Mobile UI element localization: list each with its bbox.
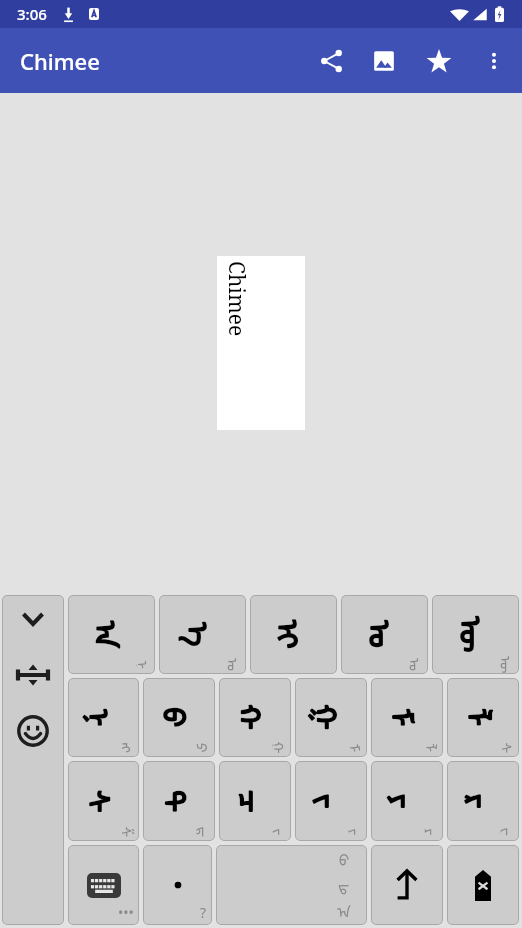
staticText: ᠵ: [272, 828, 291, 835]
staticText: ᠯ: [457, 708, 508, 726]
staticText: ᠭ: [272, 741, 291, 754]
staticText: ᠭ: [305, 704, 356, 730]
button[interactable]: Delete: [447, 845, 519, 925]
staticText: ᠴ: [230, 790, 281, 813]
button[interactable]: Share: [310, 39, 354, 83]
button[interactable]: ᠮ: [371, 678, 443, 757]
button[interactable]: More options: [472, 39, 516, 83]
staticText: ᠷ: [458, 794, 509, 809]
button[interactable]: Keyboard options: [2, 595, 64, 925]
staticText: ᠱ: [120, 826, 139, 837]
staticText: ᠪ: [153, 707, 204, 727]
staticText: ᠠ: [86, 621, 137, 648]
staticText: ᠪ: [339, 845, 350, 870]
button[interactable]: ᠨ: [68, 678, 139, 757]
button[interactable]: ᠲ: [143, 761, 215, 841]
button[interactable]: Enter: [371, 845, 443, 925]
button[interactable]: ᠴ: [219, 761, 291, 841]
staticText: ᠣ: [227, 658, 246, 672]
staticText: ᠰ: [78, 790, 129, 812]
staticText: Chimee: [20, 46, 100, 76]
staticText: ᠴ: [230, 790, 281, 813]
button[interactable]: Switch keyboard: [68, 845, 139, 925]
button[interactable]: ᠬ: [219, 678, 291, 757]
staticText: ᠲ: [153, 790, 204, 812]
button[interactable]: ᠥ: [432, 595, 519, 674]
staticText: ᠬ: [229, 704, 280, 730]
staticText: ᠸ: [500, 827, 519, 836]
button[interactable]: ᠭ: [295, 678, 367, 757]
staticText: ᠳ: [196, 826, 215, 837]
staticText: ᠰ: [500, 742, 519, 753]
staticText: ᠤ: [409, 658, 428, 672]
staticText: ᠮ: [381, 708, 432, 726]
staticText: ᠥ: [450, 616, 501, 652]
staticText: ᠨ: [78, 708, 129, 726]
staticText: ᠡ: [177, 622, 228, 646]
button[interactable]: ᠯ: [447, 678, 519, 757]
button[interactable]: ᠡ: [159, 595, 246, 674]
staticText: ᠷ: [458, 794, 509, 809]
button[interactable]: ᠶ: [371, 761, 443, 841]
button[interactable]: ᠢ: [250, 595, 337, 674]
staticText: ᠣ: [359, 620, 410, 648]
staticText: ᠶ: [382, 794, 433, 809]
button[interactable]: ᠣ: [341, 595, 428, 674]
staticText: ᠵ: [306, 794, 357, 809]
button[interactable]: ᠠ: [68, 595, 155, 674]
button[interactable]: Favorite: [417, 39, 461, 83]
staticText: ᠨ: [78, 708, 129, 726]
staticText: ?: [200, 903, 207, 922]
staticText: ᠶ: [348, 828, 367, 835]
staticText: ᠰ: [78, 790, 129, 812]
staticText: ᠮ: [348, 743, 367, 752]
staticText: ᠦ: [500, 656, 519, 674]
button[interactable]: ᠰ: [68, 761, 139, 841]
button[interactable]: Space: [216, 845, 367, 925]
staticText: ᠵ: [306, 794, 357, 809]
staticText: ᠮ: [381, 708, 432, 726]
staticText: ᠢ: [268, 620, 319, 649]
staticText: ᠪ: [153, 707, 204, 727]
staticText: 3:06: [17, 4, 47, 24]
staticText: ᠶ: [382, 794, 433, 809]
button[interactable]: ᠵ: [295, 761, 367, 841]
staticText: ᠬ: [229, 704, 280, 730]
button[interactable]: ᠷ: [447, 761, 519, 841]
button[interactable]: Image: [362, 39, 406, 83]
staticText: ᠯ: [424, 743, 443, 752]
button[interactable]: Period: [143, 845, 212, 925]
staticText: ᠩ: [120, 742, 139, 753]
staticText: ᠫ: [196, 743, 215, 753]
staticText: ᠯ: [457, 708, 508, 726]
staticText: ᠨ: [136, 660, 155, 669]
staticText: •••: [118, 903, 134, 922]
staticText: ᠥ: [450, 616, 501, 652]
staticText: ᠢ: [268, 620, 319, 649]
staticText: ᠲ: [153, 790, 204, 812]
staticText: ᠠ: [86, 621, 137, 648]
staticText: ᠭ: [305, 704, 356, 730]
staticText: ᠷ: [424, 828, 443, 835]
button[interactable]: ᠪ: [143, 678, 215, 757]
staticText: ᠠ: [337, 896, 351, 922]
staticText: ᠡ: [177, 622, 228, 646]
staticText: ᠣ: [359, 620, 410, 648]
staticText: ᠳ: [338, 870, 350, 896]
